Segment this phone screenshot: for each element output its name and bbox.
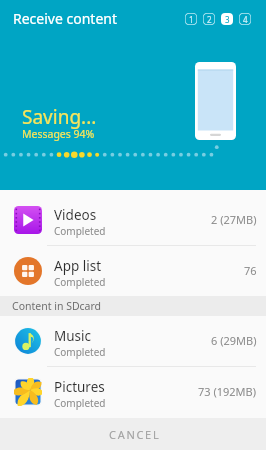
staticText: 3 (225, 14, 230, 25)
button[interactable]: Music (0, 316, 266, 366)
button[interactable]: Step 2 (203, 13, 215, 25)
staticText: Completed (54, 345, 106, 359)
staticText: 76 (244, 263, 257, 278)
staticText: 73 (192MB) (198, 384, 257, 399)
button[interactable]: Step 4 (239, 13, 251, 25)
staticText: 4 (243, 14, 248, 25)
button[interactable]: Step 3 (221, 13, 233, 25)
staticText: Music (54, 327, 92, 345)
staticText: Completed (54, 396, 106, 410)
staticText: Content in SDcard (12, 299, 102, 313)
staticText: CANCEL (109, 427, 161, 442)
staticText: 2 (27MB) (211, 212, 257, 227)
button[interactable]: Step 1 (185, 13, 197, 25)
staticText: Videos (54, 206, 97, 224)
button[interactable]: App list (0, 246, 266, 296)
button[interactable]: Videos (0, 195, 266, 245)
button[interactable]: CANCEL (0, 418, 266, 450)
staticText: Completed (54, 275, 106, 289)
staticText: Receive content (13, 9, 117, 28)
staticText: Messages 94% (22, 127, 95, 141)
staticText: Saving... (22, 104, 97, 130)
staticText: 2 (207, 14, 212, 25)
button[interactable]: Pictures (0, 367, 266, 417)
staticText: Completed (54, 224, 106, 238)
staticText: Pictures (54, 378, 105, 396)
staticText: App list (54, 257, 102, 275)
staticText: 6 (29MB) (211, 333, 257, 348)
staticText: 1 (189, 14, 194, 25)
